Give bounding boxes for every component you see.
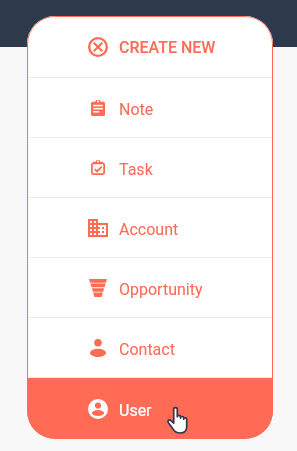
button[interactable]: Task bbox=[27, 138, 273, 197]
other: Pointer bbox=[167, 407, 187, 433]
staticText: CREATE NEW bbox=[119, 38, 216, 57]
staticText: User bbox=[119, 401, 152, 420]
staticText: Contact bbox=[119, 340, 175, 359]
button[interactable]: Opportunity bbox=[27, 258, 273, 317]
button[interactable]: Account bbox=[27, 198, 273, 257]
staticText: Task bbox=[119, 160, 153, 179]
button[interactable]: User bbox=[27, 378, 273, 439]
staticText: Account bbox=[119, 220, 179, 239]
button[interactable]: CREATE NEW bbox=[27, 16, 273, 77]
staticText: Note bbox=[119, 100, 154, 119]
button[interactable]: Note bbox=[27, 78, 273, 137]
staticText: Opportunity bbox=[119, 280, 203, 299]
button[interactable]: Contact bbox=[27, 318, 273, 377]
